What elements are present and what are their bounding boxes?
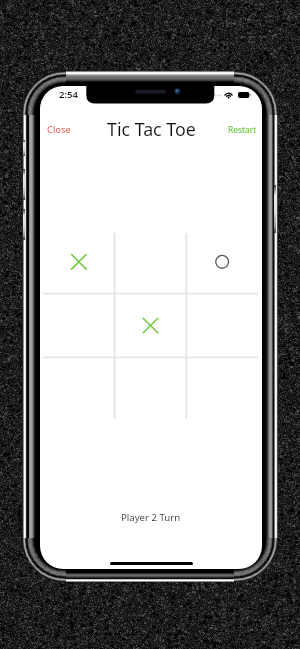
- staticText: Restart: [228, 124, 257, 135]
- staticText: Tic Tac Toe: [107, 117, 196, 141]
- button[interactable]: Restart: [223, 119, 262, 140]
- staticText: 2:54: [59, 88, 78, 101]
- other: Tic Tac Toe board: [43, 230, 258, 421]
- staticText: Player 2 Turn: [121, 511, 181, 524]
- button[interactable]: Close: [40, 118, 76, 141]
- staticText: Close: [47, 123, 71, 136]
